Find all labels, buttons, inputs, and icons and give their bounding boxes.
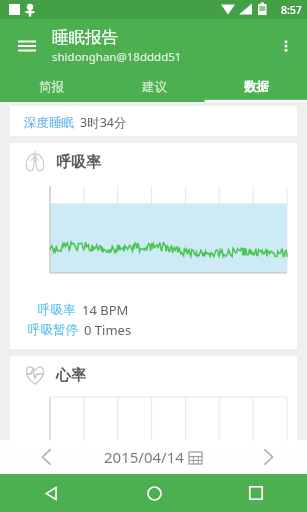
button[interactable]: 建议 — [103, 72, 205, 102]
button[interactable]: 深度睡眠 — [10, 106, 297, 136]
button[interactable]: Home — [103, 474, 205, 512]
staticText: 数据 — [244, 79, 269, 95]
button[interactable]: 呼吸率 — [10, 143, 297, 349]
staticText: 心率 — [56, 366, 86, 385]
button[interactable]: Open navigation drawer — [8, 27, 46, 65]
staticText: 呼吸率 — [38, 302, 76, 318]
button[interactable]: Next day — [251, 440, 285, 474]
staticText: 睡眠报告 — [52, 27, 118, 48]
button[interactable]: 2015/04/14 — [104, 447, 203, 467]
staticText: 2015/04/14 — [104, 447, 184, 467]
staticText: 深度睡眠 — [24, 115, 74, 131]
staticText: 3时34分 — [80, 114, 127, 131]
button[interactable]: 简报 — [0, 72, 103, 102]
staticText: shidonghan@18dddd51 — [52, 49, 182, 65]
button[interactable]: Back — [0, 474, 103, 512]
staticText: 0 Times — [84, 321, 132, 339]
staticText: 呼吸暂停 — [28, 322, 78, 338]
staticText: 建议 — [142, 79, 167, 95]
staticText: 简报 — [39, 79, 64, 95]
button[interactable]: 心率 — [10, 356, 297, 453]
staticText: 8:57 — [281, 3, 302, 17]
button[interactable]: More options — [267, 27, 305, 65]
button[interactable]: Recent apps — [205, 474, 307, 512]
button[interactable]: Previous day — [30, 440, 64, 474]
staticText: 呼吸率 — [56, 153, 101, 172]
button[interactable]: 数据 — [205, 72, 307, 102]
staticText: 14 BPM — [82, 301, 129, 319]
